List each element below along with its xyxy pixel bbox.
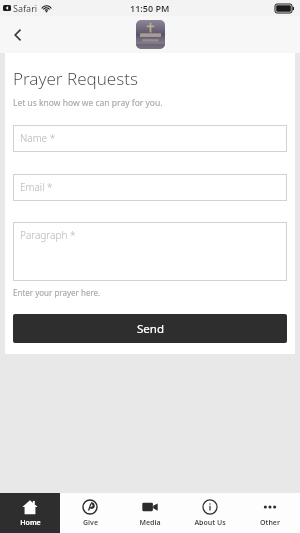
button[interactable]: Name *	[13, 125, 287, 152]
staticText: Name *	[20, 131, 56, 145]
button[interactable]: Paragraph *	[13, 222, 287, 281]
button[interactable]: Send	[13, 314, 287, 343]
button[interactable]: Email *	[13, 174, 287, 201]
staticText: Safari	[13, 2, 38, 14]
button[interactable]: Media	[120, 493, 180, 533]
staticText: Send	[137, 321, 164, 337]
staticText: Home	[20, 518, 41, 528]
staticText: About Us	[194, 518, 226, 528]
staticText: Paragraph *	[20, 228, 76, 242]
button[interactable]: About Us	[180, 493, 240, 533]
staticText: Email *	[20, 180, 53, 194]
button[interactable]: Church logo	[136, 20, 165, 49]
button[interactable]: Back	[0, 17, 36, 53]
staticText: 11:50 PM	[130, 2, 170, 14]
staticText: Enter your prayer here.	[13, 287, 101, 298]
button[interactable]: Home	[0, 493, 60, 533]
button[interactable]: Give	[60, 493, 120, 533]
staticText: Give	[83, 518, 98, 528]
staticText: Let us know how we can pray for you.	[13, 97, 163, 109]
staticText: Other	[260, 518, 280, 528]
button[interactable]: Other	[240, 493, 300, 533]
staticText: Media	[139, 518, 161, 528]
staticText: Prayer Requests	[13, 67, 138, 90]
